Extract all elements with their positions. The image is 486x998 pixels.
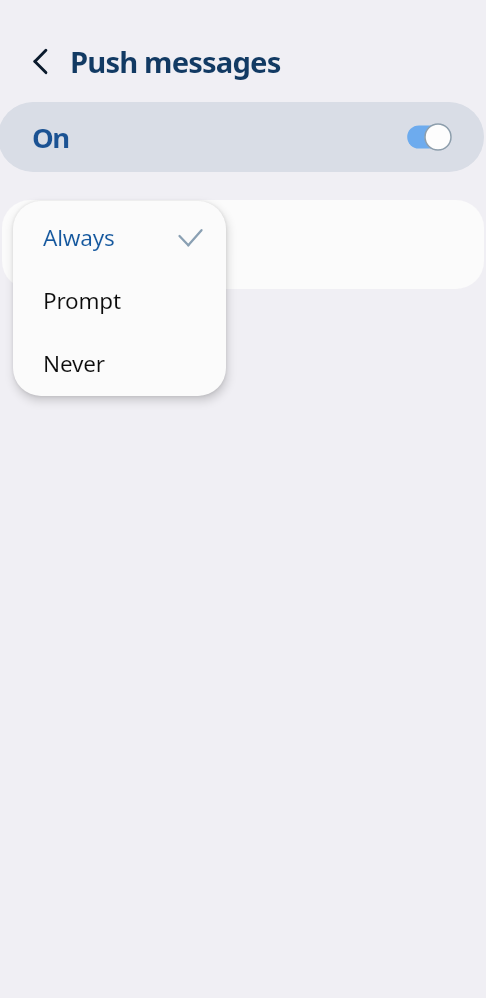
- button[interactable]: Always: [13, 206, 226, 269]
- button[interactable]: On: [0, 102, 484, 172]
- button[interactable]: Navigate up: [16, 36, 64, 84]
- staticText: Push messages: [70, 42, 281, 82]
- staticText: On: [32, 119, 69, 156]
- staticText: Never: [43, 348, 105, 379]
- staticText: Always: [43, 222, 115, 253]
- staticText: Prompt: [43, 285, 121, 316]
- button[interactable]: Show notifications preference: [2, 200, 484, 289]
- button[interactable]: Never: [13, 332, 226, 395]
- button[interactable]: Prompt: [13, 269, 226, 332]
- button[interactable]: Push messages, on: [404, 120, 454, 154]
